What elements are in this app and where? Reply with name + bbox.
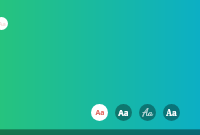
button[interactable]: Font style bbox=[91, 104, 108, 121]
staticText: Aa bbox=[142, 107, 153, 119]
staticText: Aa bbox=[0, 20, 6, 28]
button[interactable]: Font style bbox=[139, 104, 156, 121]
staticText: Aa bbox=[95, 108, 105, 118]
button[interactable]: Font style bbox=[0, 17, 8, 30]
staticText: Aa bbox=[118, 107, 129, 118]
staticText: Aa bbox=[166, 107, 177, 118]
button[interactable]: Font style bbox=[115, 104, 132, 121]
button[interactable]: Font style bbox=[163, 104, 180, 121]
